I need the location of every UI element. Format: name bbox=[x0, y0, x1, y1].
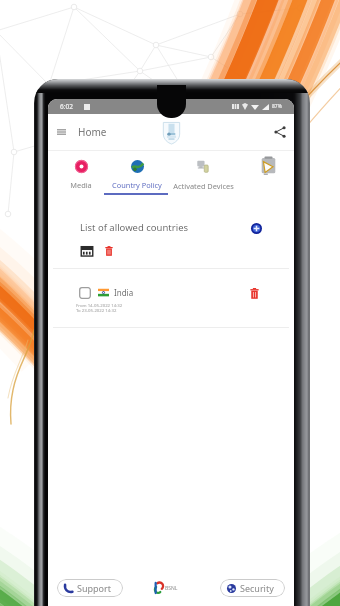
staticText: Security bbox=[240, 582, 274, 594]
button[interactable]: Logs bbox=[257, 154, 279, 178]
staticText: BSNL bbox=[165, 585, 178, 592]
button[interactable]: Share bbox=[270, 122, 290, 142]
button[interactable]: Support bbox=[57, 579, 123, 597]
staticText: From 14-05-2022 14:32 bbox=[76, 302, 123, 308]
button[interactable]: Select date range bbox=[80, 243, 94, 258]
staticText: List of allowed countries bbox=[80, 221, 189, 234]
button[interactable]: Media bbox=[48, 151, 123, 193]
button[interactable]: Open navigation menu bbox=[49, 120, 73, 144]
button[interactable]: Activated Devices bbox=[161, 151, 245, 193]
staticText: India bbox=[114, 287, 134, 298]
staticText: Media bbox=[70, 180, 92, 190]
staticText: 6:02 bbox=[60, 102, 73, 111]
button[interactable]: Add country bbox=[248, 220, 264, 236]
button[interactable]: Delete selected countries bbox=[102, 243, 115, 258]
staticText: Home bbox=[78, 125, 107, 139]
staticText: Country Policy bbox=[112, 180, 162, 190]
staticText: 87% bbox=[272, 103, 282, 110]
button[interactable]: Delete India bbox=[247, 285, 261, 301]
button[interactable]: India bbox=[48, 273, 294, 327]
staticText: Activated Devices bbox=[173, 181, 234, 191]
staticText: Support bbox=[77, 582, 111, 594]
button[interactable]: Security bbox=[220, 579, 285, 597]
staticText: To 23-05-2022 14:32 bbox=[76, 307, 117, 313]
button[interactable]: Country Policy bbox=[95, 151, 179, 193]
